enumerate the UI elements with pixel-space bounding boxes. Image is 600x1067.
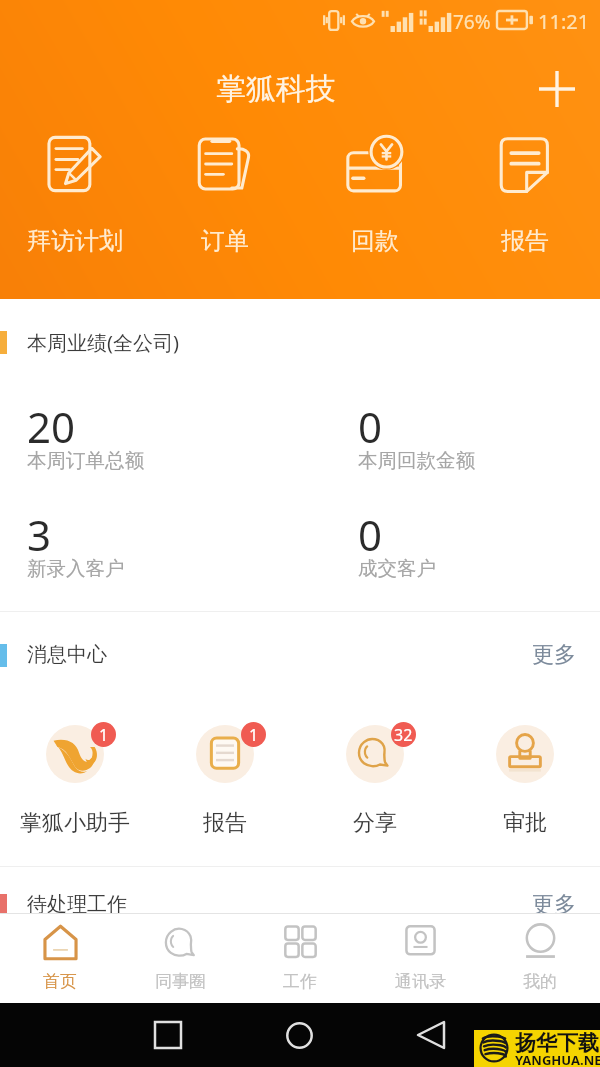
staticText: 76% — [453, 9, 491, 35]
staticText: 掌狐科技 — [216, 70, 336, 108]
staticText: 11:21 — [538, 8, 590, 35]
button[interactable]: 首页 — [0, 914, 120, 992]
staticText: 0 — [358, 506, 383, 563]
staticText: 本周回款金额 — [358, 448, 475, 473]
staticText: 本周订单总额 — [27, 448, 144, 473]
staticText: 消息中心 — [27, 642, 107, 667]
staticText: 订单 — [201, 226, 249, 256]
staticText: 成交客户 — [358, 556, 436, 581]
staticText: 本周业绩(全公司) — [27, 329, 179, 356]
staticText: 新录入客户 — [27, 556, 125, 581]
staticText: 1 — [249, 724, 259, 746]
staticText: 更多 — [532, 891, 576, 919]
button[interactable]: 1 — [150, 725, 300, 837]
staticText: 扬华下载 — [515, 1030, 599, 1056]
button[interactable]: 工作 — [240, 914, 360, 992]
staticText: 更多 — [532, 641, 576, 669]
button[interactable]: 回款 — [300, 136, 450, 256]
staticText: 0 — [358, 398, 383, 455]
button[interactable]: Add — [530, 62, 584, 116]
staticText: 工作 — [283, 971, 317, 992]
button[interactable]: 更多 — [515, 885, 593, 925]
staticText: 20 — [27, 398, 76, 455]
button[interactable]: 审批 — [450, 725, 600, 837]
staticText: 首页 — [43, 971, 77, 992]
button[interactable]: 报告 — [450, 136, 600, 256]
staticText: YANGHUA.NET — [515, 1051, 600, 1067]
staticText: 分享 — [353, 809, 397, 837]
staticText: 回款 — [351, 226, 399, 256]
button[interactable]: 32 — [300, 725, 450, 837]
staticText: 报告 — [501, 226, 549, 256]
staticText: 待处理工作 — [27, 892, 127, 917]
button[interactable]: 拜访计划 — [0, 136, 150, 256]
staticText: 我的 — [523, 971, 557, 992]
staticText: 通讯录 — [395, 971, 446, 992]
button[interactable]: 1 — [0, 725, 150, 837]
button[interactable]: 订单 — [150, 136, 300, 256]
button[interactable]: 更多 — [515, 635, 593, 675]
staticText: 审批 — [503, 809, 547, 837]
button[interactable]: 同事圈 — [120, 914, 240, 992]
button[interactable]: 通讯录 — [360, 914, 480, 992]
staticText: 同事圈 — [155, 971, 206, 992]
staticText: 3 — [27, 506, 52, 563]
staticText: 报告 — [203, 809, 247, 837]
staticText: 掌狐小助手 — [20, 809, 130, 837]
staticText: 1 — [99, 724, 109, 746]
staticText: 32 — [394, 724, 413, 746]
staticText: 拜访计划 — [27, 226, 123, 256]
button[interactable]: 我的 — [480, 914, 600, 992]
